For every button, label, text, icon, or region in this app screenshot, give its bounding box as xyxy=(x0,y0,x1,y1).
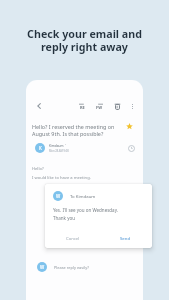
button[interactable]: Delete xyxy=(111,100,123,112)
staticText: Kimdaum ˅ xyxy=(49,144,67,148)
staticText: K xyxy=(39,145,42,151)
staticText: Hello? I reserved the meeting on August … xyxy=(32,123,125,137)
staticText: Mon 28 AM 9:00 xyxy=(49,149,69,153)
staticText: To Kimdaum xyxy=(70,193,96,199)
button[interactable]: Cancel xyxy=(62,232,84,244)
staticText: Yes. I'll see you on Wednesday. Thank yo… xyxy=(53,207,118,222)
button[interactable]: Back xyxy=(33,100,45,112)
staticText: Cancel xyxy=(66,235,80,241)
button[interactable]: Reply xyxy=(76,100,88,112)
button[interactable]: More options xyxy=(126,100,138,112)
staticText: Please reply easily? xyxy=(54,265,89,270)
button[interactable]: Send xyxy=(116,232,135,244)
staticText: Check your email and reply right away xyxy=(27,27,142,54)
staticText: W xyxy=(56,193,61,199)
button[interactable]: Forward xyxy=(93,100,105,112)
staticText: FW xyxy=(96,105,103,110)
staticText: W xyxy=(40,264,45,270)
staticText: RE xyxy=(80,105,85,110)
button[interactable]: Star xyxy=(125,122,134,131)
staticText: Hello? xyxy=(32,166,44,172)
staticText: I would like to have a meeting. xyxy=(32,175,91,181)
staticText: Send xyxy=(120,235,131,241)
button[interactable]: Schedule xyxy=(127,144,136,153)
